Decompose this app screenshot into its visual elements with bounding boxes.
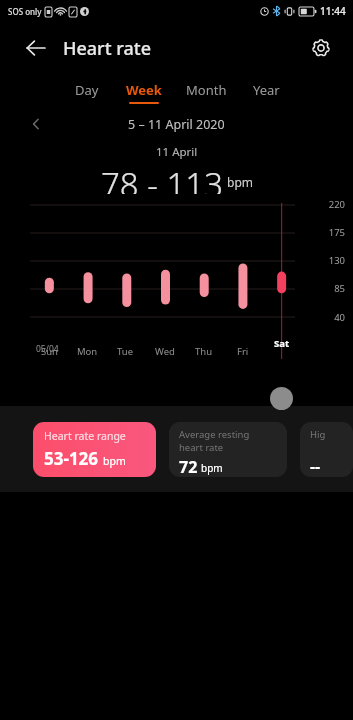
staticText: Sat <box>274 337 290 350</box>
staticText: Month <box>186 81 227 99</box>
staticText: 5 – 11 April 2020 <box>128 116 225 133</box>
staticText: 11:44 <box>320 4 346 18</box>
button[interactable]: Month <box>174 79 239 106</box>
button[interactable]: Settings <box>301 28 341 68</box>
button[interactable]: Sat <box>262 345 301 358</box>
staticText: Wed <box>155 345 175 358</box>
staticText: Fri <box>237 345 249 358</box>
button[interactable]: Wed <box>145 345 184 358</box>
button[interactable]: Hig <box>300 422 353 477</box>
button[interactable]: Mon <box>68 345 106 358</box>
staticText: Day <box>75 81 99 99</box>
staticText: heart rate <box>179 441 224 454</box>
staticText: 05/04 <box>36 343 59 355</box>
staticText: 175 <box>328 226 345 239</box>
staticText: Hig <box>310 428 326 441</box>
staticText: 11 April <box>156 144 198 160</box>
staticText: Heart rate <box>63 36 152 61</box>
staticText: 78 - 113 <box>101 162 224 194</box>
staticText: 72 <box>179 456 198 477</box>
button[interactable]: Fri <box>223 345 262 358</box>
button[interactable]: Heart rate range <box>33 422 156 477</box>
staticText: Tue <box>117 345 134 358</box>
staticText: Average resting <box>179 428 250 441</box>
button[interactable]: Day <box>60 79 114 106</box>
button[interactable]: Sun <box>30 345 68 358</box>
staticText: Week <box>126 81 162 99</box>
button[interactable]: Thu <box>184 345 223 358</box>
staticText: 40 <box>334 311 345 324</box>
staticText: Sun <box>41 345 58 358</box>
staticText: 85 <box>334 282 345 295</box>
staticText: Mon <box>77 345 98 358</box>
button[interactable]: Previous week <box>22 110 50 138</box>
staticText: bpm <box>201 461 223 475</box>
staticText: 130 <box>328 254 345 267</box>
button[interactable]: Back <box>16 28 56 68</box>
staticText: bpm <box>227 174 253 190</box>
staticText: 53-126 <box>44 447 99 470</box>
button[interactable]: Year <box>239 79 293 106</box>
button[interactable]: Week <box>114 79 174 106</box>
staticText: -- <box>310 455 321 477</box>
staticText: 220 <box>328 198 345 211</box>
staticText: bpm <box>103 454 126 468</box>
staticText: SOS only <box>8 6 42 17</box>
staticText: Heart rate range <box>44 429 126 443</box>
staticText: Year <box>253 81 280 99</box>
staticText: Thu <box>195 345 213 358</box>
button[interactable]: Average resting <box>169 422 287 477</box>
button[interactable]: Tue <box>106 345 145 358</box>
